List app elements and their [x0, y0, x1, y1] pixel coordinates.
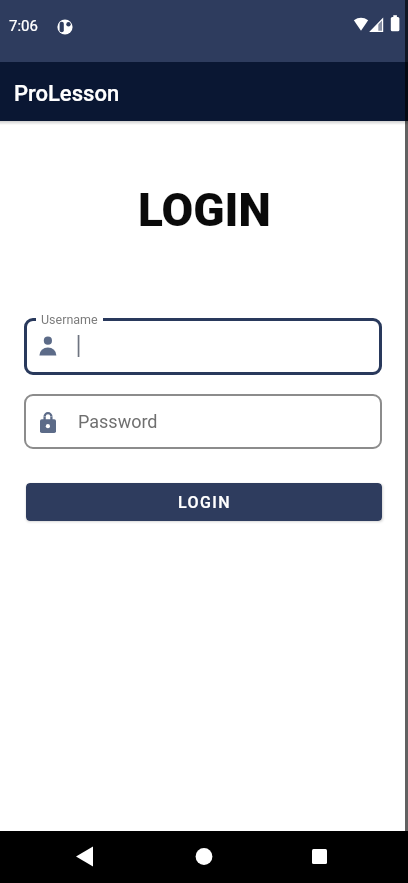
staticText: LOGIN [138, 183, 271, 237]
button[interactable] [24, 394, 382, 449]
staticText: Password [78, 411, 158, 432]
button[interactable] [60, 837, 110, 877]
button[interactable]: LOGIN [26, 483, 382, 521]
button[interactable] [179, 837, 229, 877]
button[interactable] [294, 837, 344, 877]
staticText: ProLesson [14, 81, 120, 107]
button[interactable] [24, 318, 382, 375]
staticText: LOGIN [178, 493, 231, 512]
staticText: 7:06 [9, 17, 38, 35]
staticText: Username [41, 312, 98, 327]
